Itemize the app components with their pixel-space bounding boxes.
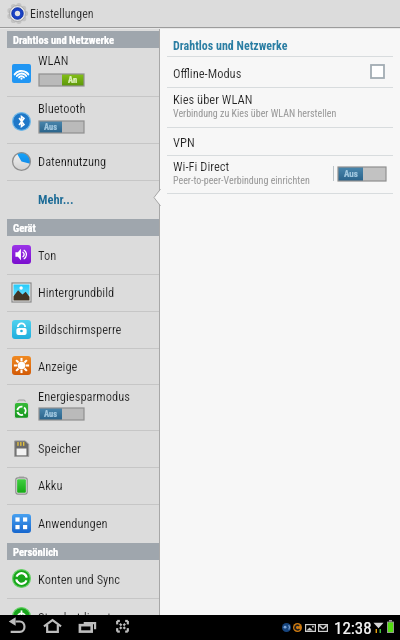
button[interactable]: Aus xyxy=(39,408,84,420)
button[interactable]: Offline-Modus xyxy=(160,56,400,87)
staticText: Persönlich xyxy=(13,546,59,558)
button[interactable]: Anzeige xyxy=(0,348,159,384)
staticText: Bildschirmsperre xyxy=(38,322,122,337)
button[interactable]: Anwendungen xyxy=(0,504,159,543)
button[interactable]: Offline-Modus xyxy=(371,65,384,78)
button[interactable]: Standortdienste xyxy=(0,598,159,636)
staticText: VPN xyxy=(173,135,195,150)
button[interactable]: Ton xyxy=(0,236,159,274)
button[interactable]: Recent apps xyxy=(76,616,104,638)
button[interactable]: Mehr... xyxy=(0,180,159,219)
staticText: Drahtlos und Netzwerke xyxy=(13,34,115,46)
button[interactable]: Aus xyxy=(338,167,386,181)
button[interactable]: WLAN xyxy=(0,48,159,96)
staticText: Datennutzung xyxy=(38,154,107,169)
button[interactable]: Aus xyxy=(39,121,84,133)
staticText: 12:38 xyxy=(334,618,372,638)
button[interactable]: Konten und Sync xyxy=(0,560,159,598)
button[interactable]: Back xyxy=(6,616,34,638)
staticText: Hintergrundbild xyxy=(38,285,115,300)
button[interactable]: Akku xyxy=(0,467,159,504)
staticText: Offline-Modus xyxy=(173,66,242,81)
staticText: An xyxy=(68,75,78,85)
staticText: Kies über WLAN xyxy=(173,92,253,107)
button[interactable]: Home xyxy=(41,616,69,638)
button[interactable]: Bluetooth xyxy=(0,96,159,143)
staticText: Speicher xyxy=(38,441,81,456)
staticText: Drahtlos und Netzwerke xyxy=(173,39,288,53)
button[interactable]: Datennutzung xyxy=(0,143,159,180)
staticText: Verbindung zu Kies über WLAN herstellen xyxy=(173,108,337,120)
staticText: Anwendungen xyxy=(38,516,108,531)
button[interactable]: Energiesparmodus xyxy=(0,384,159,430)
button[interactable]: Einstellungen xyxy=(0,0,400,27)
staticText: Anzeige xyxy=(38,359,78,374)
button[interactable]: Speicher xyxy=(0,430,159,467)
button[interactable]: Kies über WLAN xyxy=(160,87,400,127)
staticText: Standortdienste xyxy=(38,610,117,625)
button[interactable]: Hintergrundbild xyxy=(0,274,159,311)
button[interactable]: Wi-Fi Direct xyxy=(160,155,400,193)
button[interactable]: Bildschirmsperre xyxy=(0,311,159,348)
staticText: Ton xyxy=(38,248,57,263)
staticText: Energiesparmodus xyxy=(38,389,131,404)
staticText: Einstellungen xyxy=(30,7,94,21)
staticText: Akku xyxy=(38,478,63,493)
staticText: WLAN xyxy=(38,53,69,68)
button[interactable]: VPN xyxy=(160,127,400,155)
staticText: Aus xyxy=(344,169,358,180)
staticText: Wi-Fi Direct xyxy=(173,159,230,174)
staticText: Mehr... xyxy=(38,192,74,207)
staticText: Aus xyxy=(44,409,58,419)
staticText: Gerät xyxy=(13,222,36,234)
staticText: Aus xyxy=(44,122,58,132)
staticText: Konten und Sync xyxy=(38,572,121,587)
staticText: Peer-to-peer-Verbindung einrichten xyxy=(173,175,310,187)
button[interactable]: Screenshot xyxy=(111,616,139,638)
staticText: Bluetooth xyxy=(38,101,86,116)
button[interactable]: An xyxy=(39,74,84,86)
